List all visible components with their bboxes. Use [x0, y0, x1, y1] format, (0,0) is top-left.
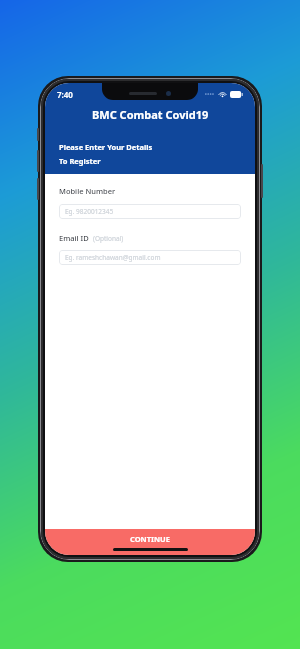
staticText: Mobile Number	[59, 186, 116, 196]
staticText: (Optional)	[93, 234, 124, 243]
staticText: Please Enter Your Details	[59, 142, 153, 152]
button[interactable]: Eg. rameshchawan@gmail.com	[59, 250, 241, 265]
staticText: Eg. rameshchawan@gmail.com	[65, 253, 161, 262]
staticText: Email ID	[59, 233, 89, 243]
staticText: Eg. 9820012345	[65, 207, 114, 216]
staticText: To Register	[59, 156, 101, 166]
staticText: CONTINUE	[130, 534, 170, 544]
staticText: 7:40	[57, 89, 73, 100]
button[interactable]: Eg. 9820012345	[59, 204, 241, 219]
staticText: BMC Combat Covid19	[92, 107, 209, 122]
button[interactable]: CONTINUE	[45, 529, 255, 555]
